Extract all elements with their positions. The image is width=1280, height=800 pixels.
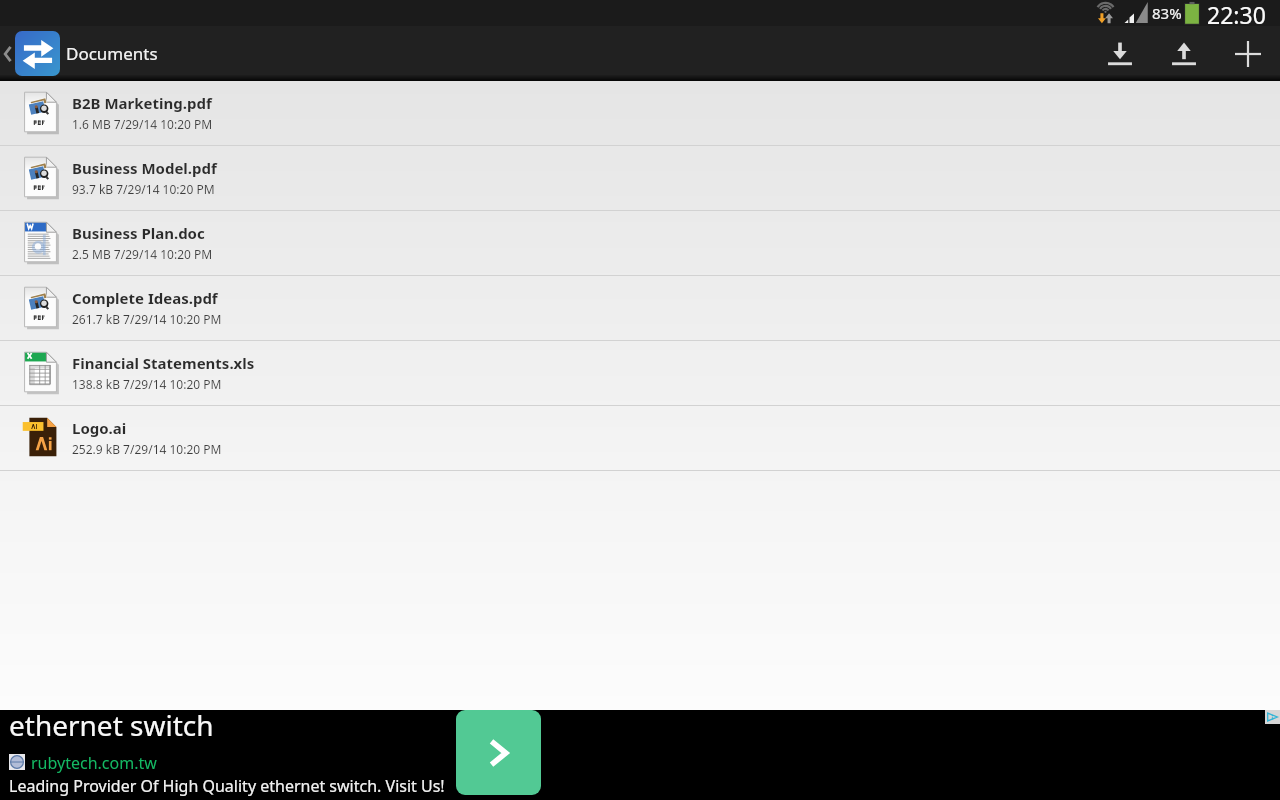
- button[interactable]: Open ad: [456, 710, 541, 795]
- button[interactable]: Upload: [1152, 26, 1216, 81]
- button[interactable]: App icon: [15, 31, 60, 76]
- staticText: B2B Marketing.pdf: [72, 93, 212, 113]
- staticText: 1.6 MB 7/29/14 10:20 PM: [72, 116, 213, 132]
- staticText: Logo.ai: [72, 418, 127, 438]
- button[interactable]: Back: [0, 26, 15, 81]
- staticText: 261.7 kB 7/29/14 10:20 PM: [72, 311, 222, 327]
- staticText: 252.9 kB 7/29/14 10:20 PM: [72, 441, 222, 457]
- button[interactable]: Logo.ai: [0, 406, 1280, 471]
- button[interactable]: Financial Statements.xls: [0, 341, 1280, 406]
- staticText: Complete Ideas.pdf: [72, 288, 218, 308]
- button[interactable]: Download: [1088, 26, 1152, 81]
- staticText: Financial Statements.xls: [72, 353, 255, 373]
- staticText: 83%: [1152, 3, 1182, 23]
- button[interactable]: Complete Ideas.pdf: [0, 276, 1280, 341]
- staticText: Business Model.pdf: [72, 158, 217, 178]
- staticText: Leading Provider Of High Quality etherne…: [9, 775, 445, 797]
- staticText: 2.5 MB 7/29/14 10:20 PM: [72, 246, 213, 262]
- staticText: 22:30: [1207, 0, 1266, 25]
- button[interactable]: B2B Marketing.pdf: [0, 81, 1280, 146]
- staticText: 93.7 kB 7/29/14 10:20 PM: [72, 181, 215, 197]
- staticText: rubytech.com.tw: [31, 752, 157, 774]
- button[interactable]: Business Plan.doc: [0, 211, 1280, 276]
- button[interactable]: Business Model.pdf: [0, 146, 1280, 211]
- button[interactable]: Add: [1216, 26, 1280, 81]
- staticText: ethernet switch: [9, 706, 214, 744]
- staticText: Business Plan.doc: [72, 223, 205, 243]
- staticText: 138.8 kB 7/29/14 10:20 PM: [72, 376, 222, 392]
- staticText: Documents: [66, 42, 158, 65]
- button[interactable]: AdChoices: [1265, 710, 1280, 724]
